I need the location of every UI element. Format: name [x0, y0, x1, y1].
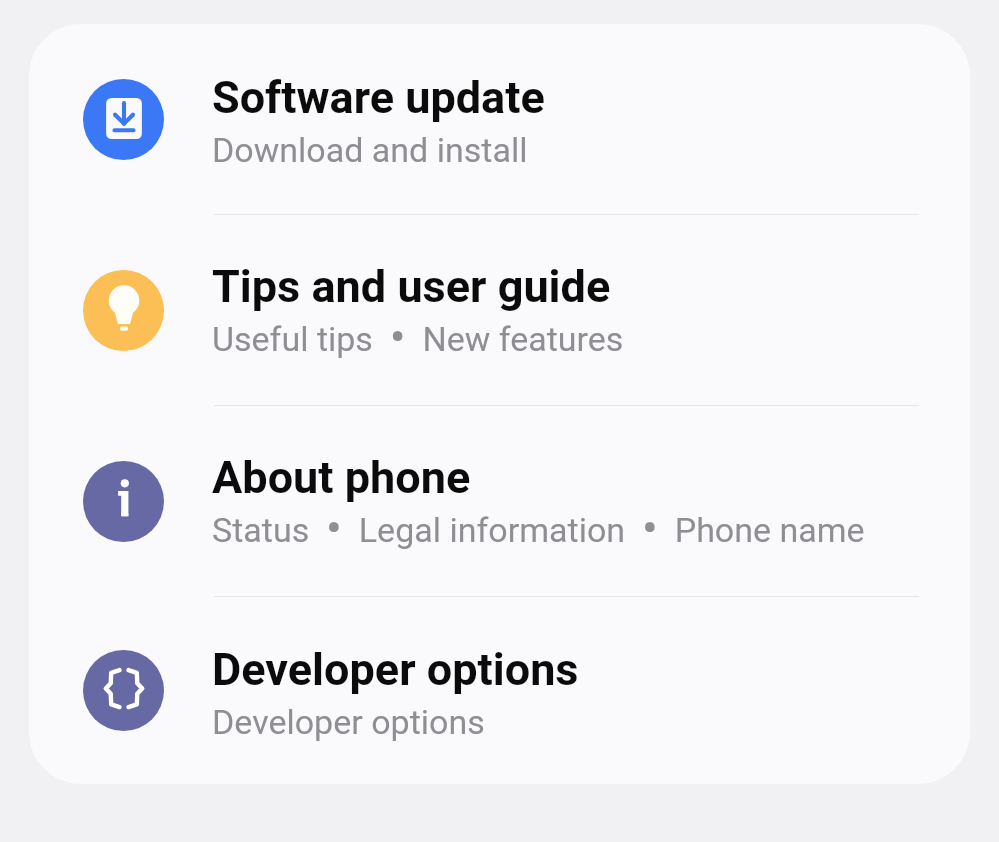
staticText: About phone [212, 451, 471, 504]
staticText: Status • Legal information • Phone name [212, 510, 865, 554]
button[interactable]: Software update [29, 24, 970, 214]
staticText: Useful tips • New features [212, 319, 624, 363]
staticText: Tips and user guide [212, 260, 611, 313]
staticText: Download and install [212, 130, 528, 170]
staticText: Developer options [212, 643, 579, 696]
other: About phone [83, 461, 164, 542]
staticText: Developer options [212, 702, 485, 742]
button[interactable]: Developer options [29, 597, 970, 784]
staticText: Software update [212, 71, 545, 124]
other: Developer options [83, 650, 164, 731]
other: Software update [83, 79, 164, 160]
other: Tips and user guide [83, 270, 164, 351]
button[interactable]: About phone [29, 406, 970, 596]
button[interactable]: Tips and user guide [29, 215, 970, 405]
